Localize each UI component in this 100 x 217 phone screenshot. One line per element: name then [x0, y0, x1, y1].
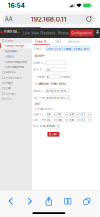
button[interactable]: User Management — [0, 64, 32, 70]
staticText: Enable DST — [38, 108, 53, 111]
staticText: Sun — [70, 113, 74, 116]
staticText: Maintenance — [5, 50, 17, 53]
button[interactable]: Picture — [57, 30, 70, 37]
staticText: Event — [5, 87, 11, 90]
staticText: 60 — [46, 75, 49, 78]
staticText: (GMT+05:30) Chennai, Kolkata, Mu — [46, 47, 86, 50]
button[interactable]: DST — [50, 38, 67, 45]
staticText: Storage — [5, 92, 15, 95]
staticText: Configuration — [71, 31, 92, 35]
button[interactable]: Bookmarks — [58, 194, 77, 208]
staticText: Time Settings — [35, 40, 49, 43]
staticText: Network — [5, 71, 15, 74]
button[interactable]: Page settings — [3, 14, 15, 24]
button[interactable]: Time Settings — [33, 38, 50, 45]
staticText: System — [5, 39, 13, 42]
staticText: User Management — [5, 66, 24, 69]
staticText: Video/Audio — [5, 76, 22, 79]
button[interactable]: Security — [0, 54, 32, 59]
staticText: Camera Management — [5, 60, 27, 63]
button[interactable]: VCA — [0, 96, 32, 102]
button[interactable]: Device Parameters — [67, 38, 83, 45]
button[interactable]: Forward — [20, 194, 39, 208]
staticText: 30minute(s) — [46, 125, 57, 127]
staticText: 16:54 — [8, 2, 25, 9]
staticText: Security — [5, 55, 14, 58]
staticText: Server Address — [33, 61, 44, 64]
button[interactable]: Video/Audio — [0, 75, 32, 80]
button[interactable]: Maintenance — [0, 49, 32, 54]
staticText: 02 — [81, 118, 84, 121]
staticText: NTP — [38, 54, 44, 57]
staticText: minute(s) — [61, 75, 71, 78]
staticText: NTP Port — [33, 68, 44, 71]
staticText: Device Time — [33, 89, 44, 92]
staticText: Start Time — [33, 113, 44, 116]
staticText: Set Time — [33, 96, 44, 99]
staticText: 2019-06-17T16:54:42 — [46, 89, 70, 92]
staticText: 02 — [81, 113, 84, 116]
staticText: 123 — [46, 68, 49, 71]
staticText: 192.168.0.11 — [31, 15, 67, 23]
staticText: VCA — [5, 97, 11, 100]
button[interactable]: Account — [94, 30, 100, 37]
button[interactable]: Network — [0, 70, 32, 75]
staticText: Live View — [23, 31, 38, 35]
button[interactable]: Back — [1, 194, 20, 208]
staticText: System Settings — [5, 44, 24, 47]
staticText: Oct — [46, 118, 50, 121]
staticText: DST Bias — [33, 125, 44, 128]
staticText: DST — [55, 40, 61, 43]
staticText: 1st — [58, 113, 61, 116]
staticText: 2019-06-17T16:54:32 — [46, 96, 67, 99]
button[interactable]: Share — [39, 194, 58, 208]
staticText: Playback — [41, 31, 56, 35]
button[interactable]: Playback — [39, 30, 57, 37]
button[interactable]: Reload — [83, 14, 95, 24]
button[interactable]: Camera Management — [0, 59, 32, 64]
button[interactable]: Live View — [22, 30, 39, 37]
staticText: Picture — [58, 31, 69, 35]
staticText: Save — [52, 133, 58, 136]
button[interactable]: NTP — [32, 52, 100, 59]
button[interactable]: Tabs — [77, 194, 96, 208]
staticText: Interval — [36, 75, 44, 78]
button[interactable]: Enable DST — [32, 106, 100, 112]
staticText: HIKVISION — [4, 29, 22, 34]
button[interactable]: Event — [0, 86, 32, 91]
button[interactable]: Image — [0, 80, 32, 86]
staticText: Sun — [70, 118, 74, 121]
staticText: Time Zone — [33, 47, 44, 50]
staticText: Device Parameters — [68, 40, 82, 43]
button[interactable]: Save — [47, 132, 59, 137]
staticText: Manual Time Sync. — [38, 82, 67, 85]
staticText: Apr — [46, 113, 50, 116]
staticText: Image — [5, 81, 12, 85]
button[interactable]: System Settings — [0, 43, 32, 49]
button[interactable]: System — [0, 38, 32, 43]
button[interactable]: Configuration — [70, 30, 94, 37]
button[interactable]: Manual Time Sync. — [32, 80, 100, 87]
staticText: End Time — [33, 118, 44, 121]
staticText: AA — [5, 16, 13, 22]
button[interactable]: Storage — [0, 91, 32, 96]
staticText: last — [58, 118, 62, 121]
staticText: DST — [35, 102, 41, 105]
